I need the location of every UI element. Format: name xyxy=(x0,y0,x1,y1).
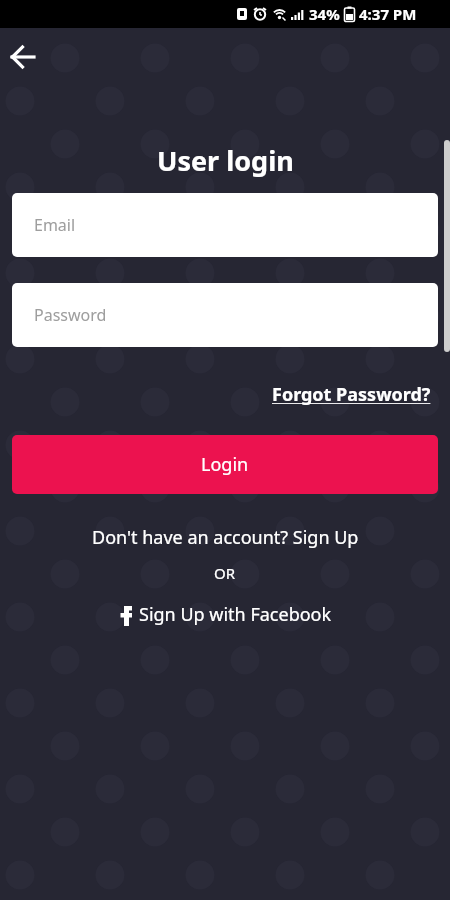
button[interactable]: Forgot Password? xyxy=(272,382,431,407)
staticText: Login xyxy=(201,452,249,477)
button[interactable]: Login xyxy=(12,435,438,494)
staticText: OR xyxy=(214,563,236,583)
staticText: 4:37 PM xyxy=(359,4,417,24)
button[interactable]: Don't have an account? Sign Up xyxy=(92,525,359,550)
staticText: Sign Up with Facebook xyxy=(139,602,332,627)
button[interactable] xyxy=(6,40,40,74)
button[interactable]: Sign Up with Facebook xyxy=(119,602,332,627)
button[interactable]: Email xyxy=(12,193,438,257)
staticText: 34% xyxy=(309,4,340,24)
staticText: User login xyxy=(157,142,294,179)
staticText: Password xyxy=(34,304,107,326)
staticText: Email xyxy=(34,214,76,236)
button[interactable]: Password xyxy=(12,283,438,347)
